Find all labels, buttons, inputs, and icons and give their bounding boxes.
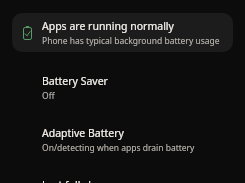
- staticText: On/detecting when apps drain battery: [42, 142, 195, 154]
- staticText: Adaptive Battery: [42, 126, 124, 140]
- staticText: Phone has typical background battery usa…: [42, 35, 220, 47]
- other: Battery healthy: [23, 26, 32, 40]
- button[interactable]: Last full charge: [0, 154, 245, 183]
- staticText: Battery Saver: [42, 74, 108, 88]
- button[interactable]: Battery healthy: [12, 13, 233, 52]
- button[interactable]: Adaptive Battery: [0, 102, 245, 154]
- staticText: Off: [42, 90, 55, 102]
- staticText: Apps are running normally: [42, 19, 174, 33]
- staticText: Last full charge: [42, 178, 118, 183]
- button[interactable]: Battery Saver: [0, 52, 245, 102]
